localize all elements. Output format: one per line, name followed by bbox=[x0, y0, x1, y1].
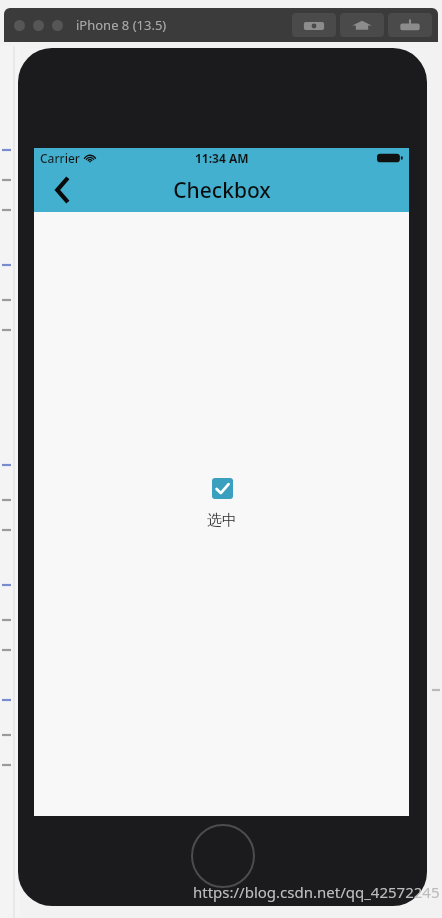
staticText: 11:34 AM bbox=[195, 150, 249, 166]
staticText: 选中 bbox=[207, 511, 237, 530]
button[interactable]: Screenshot bbox=[292, 13, 336, 37]
staticText: https://blog.csdn.net/qq_42572245 bbox=[193, 882, 440, 902]
button[interactable]: Home bbox=[340, 13, 384, 37]
button[interactable]: Window control bbox=[33, 20, 44, 31]
button[interactable]: Window control bbox=[14, 20, 25, 31]
button[interactable]: Home bbox=[191, 824, 255, 888]
button[interactable]: Checkbox, checked bbox=[207, 478, 237, 530]
other: Checkbox, checked bbox=[212, 478, 233, 499]
button[interactable]: Back bbox=[42, 168, 82, 212]
button[interactable]: Window control bbox=[52, 20, 63, 31]
staticText: iPhone 8 (13.5) bbox=[76, 16, 167, 34]
staticText: Checkbox bbox=[173, 176, 271, 205]
button[interactable]: Share bbox=[388, 13, 432, 37]
staticText: Carrier bbox=[40, 150, 80, 166]
